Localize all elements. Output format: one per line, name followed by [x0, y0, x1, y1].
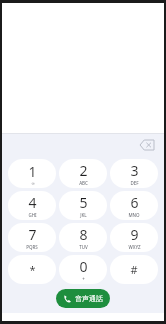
staticText: 1	[28, 162, 37, 181]
button[interactable]: 7	[8, 223, 56, 252]
staticText: 7	[28, 225, 37, 244]
button[interactable]: 9	[110, 223, 158, 252]
button[interactable]: Backspace	[137, 137, 157, 153]
button[interactable]: 8	[59, 223, 107, 252]
staticText: 6	[130, 193, 139, 212]
staticText: 4	[28, 193, 37, 212]
button[interactable]: 3	[110, 159, 158, 188]
staticText: DEF	[130, 180, 139, 186]
staticText: #	[130, 262, 138, 277]
staticText: 0	[79, 257, 88, 276]
staticText: GHI	[28, 212, 37, 218]
button[interactable]: 5	[59, 191, 107, 220]
button[interactable]: 音声通話	[56, 289, 110, 308]
staticText: MNO	[128, 212, 140, 218]
staticText: *	[29, 262, 36, 277]
staticText: 音声通話	[75, 294, 103, 303]
button[interactable]: 1	[8, 159, 56, 188]
staticText: 5	[79, 193, 88, 212]
staticText: 9	[130, 225, 139, 244]
staticText: WXYZ	[128, 244, 141, 250]
button[interactable]: #	[110, 255, 158, 284]
staticText: 2	[79, 161, 88, 180]
button[interactable]: 6	[110, 191, 158, 220]
button[interactable]: 4	[8, 191, 56, 220]
staticText: JKL	[80, 212, 87, 218]
button[interactable]: 2	[59, 159, 107, 188]
button[interactable]: *	[8, 255, 56, 284]
staticText: ABC	[79, 180, 88, 186]
staticText: +	[82, 276, 85, 282]
staticText: ∞	[31, 181, 35, 186]
staticText: PQRS	[26, 244, 38, 250]
staticText: 3	[130, 161, 139, 180]
staticText: TUV	[79, 244, 88, 250]
staticText: 8	[79, 225, 88, 244]
button[interactable]: 0	[59, 255, 107, 284]
